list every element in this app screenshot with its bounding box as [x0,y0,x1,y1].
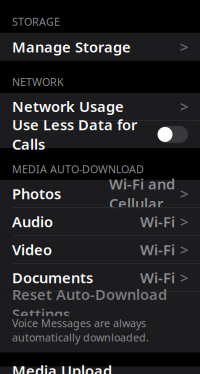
staticText: Video [12,240,52,259]
staticText: Wi-Fi [140,268,175,287]
staticText: > [180,268,188,287]
button[interactable]: Media Upload Quality [0,366,200,374]
staticText: Media Upload Quality [12,361,112,374]
button[interactable]: Video [0,236,200,263]
staticText: NETWORK [12,75,64,89]
button[interactable]: Network Usage [0,93,200,120]
staticText: > [180,97,188,116]
staticText: Manage Storage [12,37,131,56]
staticText: MEDIA AUTO-DOWNLOAD [12,162,144,176]
staticText: Wi-Fi [140,212,175,231]
staticText: Network Usage [12,97,124,116]
button[interactable]: Reset Auto-Download Settings [0,292,200,316]
staticText: Reset Auto-Download Settings [12,285,167,324]
staticText: Voice Messages are always automatically … [12,316,149,344]
staticText: Wi-Fi [140,240,175,259]
staticText: > [180,240,188,259]
staticText: > [180,212,188,231]
button[interactable]: Documents [0,264,200,291]
button[interactable]: Photos [0,180,200,207]
staticText: > [180,37,188,56]
button[interactable]: Manage Storage [0,33,200,61]
button[interactable]: Use Less Data for Calls [0,121,200,148]
staticText: STORAGE [12,15,60,29]
staticText: Wi-Fi and Cellular [109,174,175,213]
staticText: Photos [12,184,61,203]
button[interactable]: Audio [0,208,200,235]
staticText: > [180,184,188,203]
staticText: Documents [12,268,93,287]
staticText: Use Less Data for Calls [12,115,137,154]
staticText: Audio [12,212,53,231]
